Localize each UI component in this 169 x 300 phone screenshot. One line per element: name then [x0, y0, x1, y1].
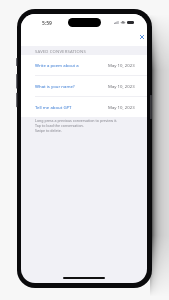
- staticText: Tell me about GPT: [35, 104, 72, 110]
- button[interactable]: What is your name?: [21, 76, 147, 96]
- button[interactable]: Tell me about GPT: [21, 97, 147, 117]
- staticText: SAVED CONVERSATIONS: [35, 49, 86, 55]
- staticText: May 10, 2023: [108, 104, 135, 110]
- staticText: What is your name?: [35, 83, 75, 89]
- staticText: May 10, 2023: [108, 83, 135, 89]
- staticText: Write a poem about a: [35, 62, 79, 68]
- staticText: May 10, 2023: [108, 62, 135, 68]
- staticText: Long press a previous conversation to pr…: [35, 118, 118, 133]
- staticText: 5:59: [42, 20, 52, 27]
- button[interactable]: Close: [136, 31, 147, 42]
- button[interactable]: Write a poem about a: [21, 55, 147, 75]
